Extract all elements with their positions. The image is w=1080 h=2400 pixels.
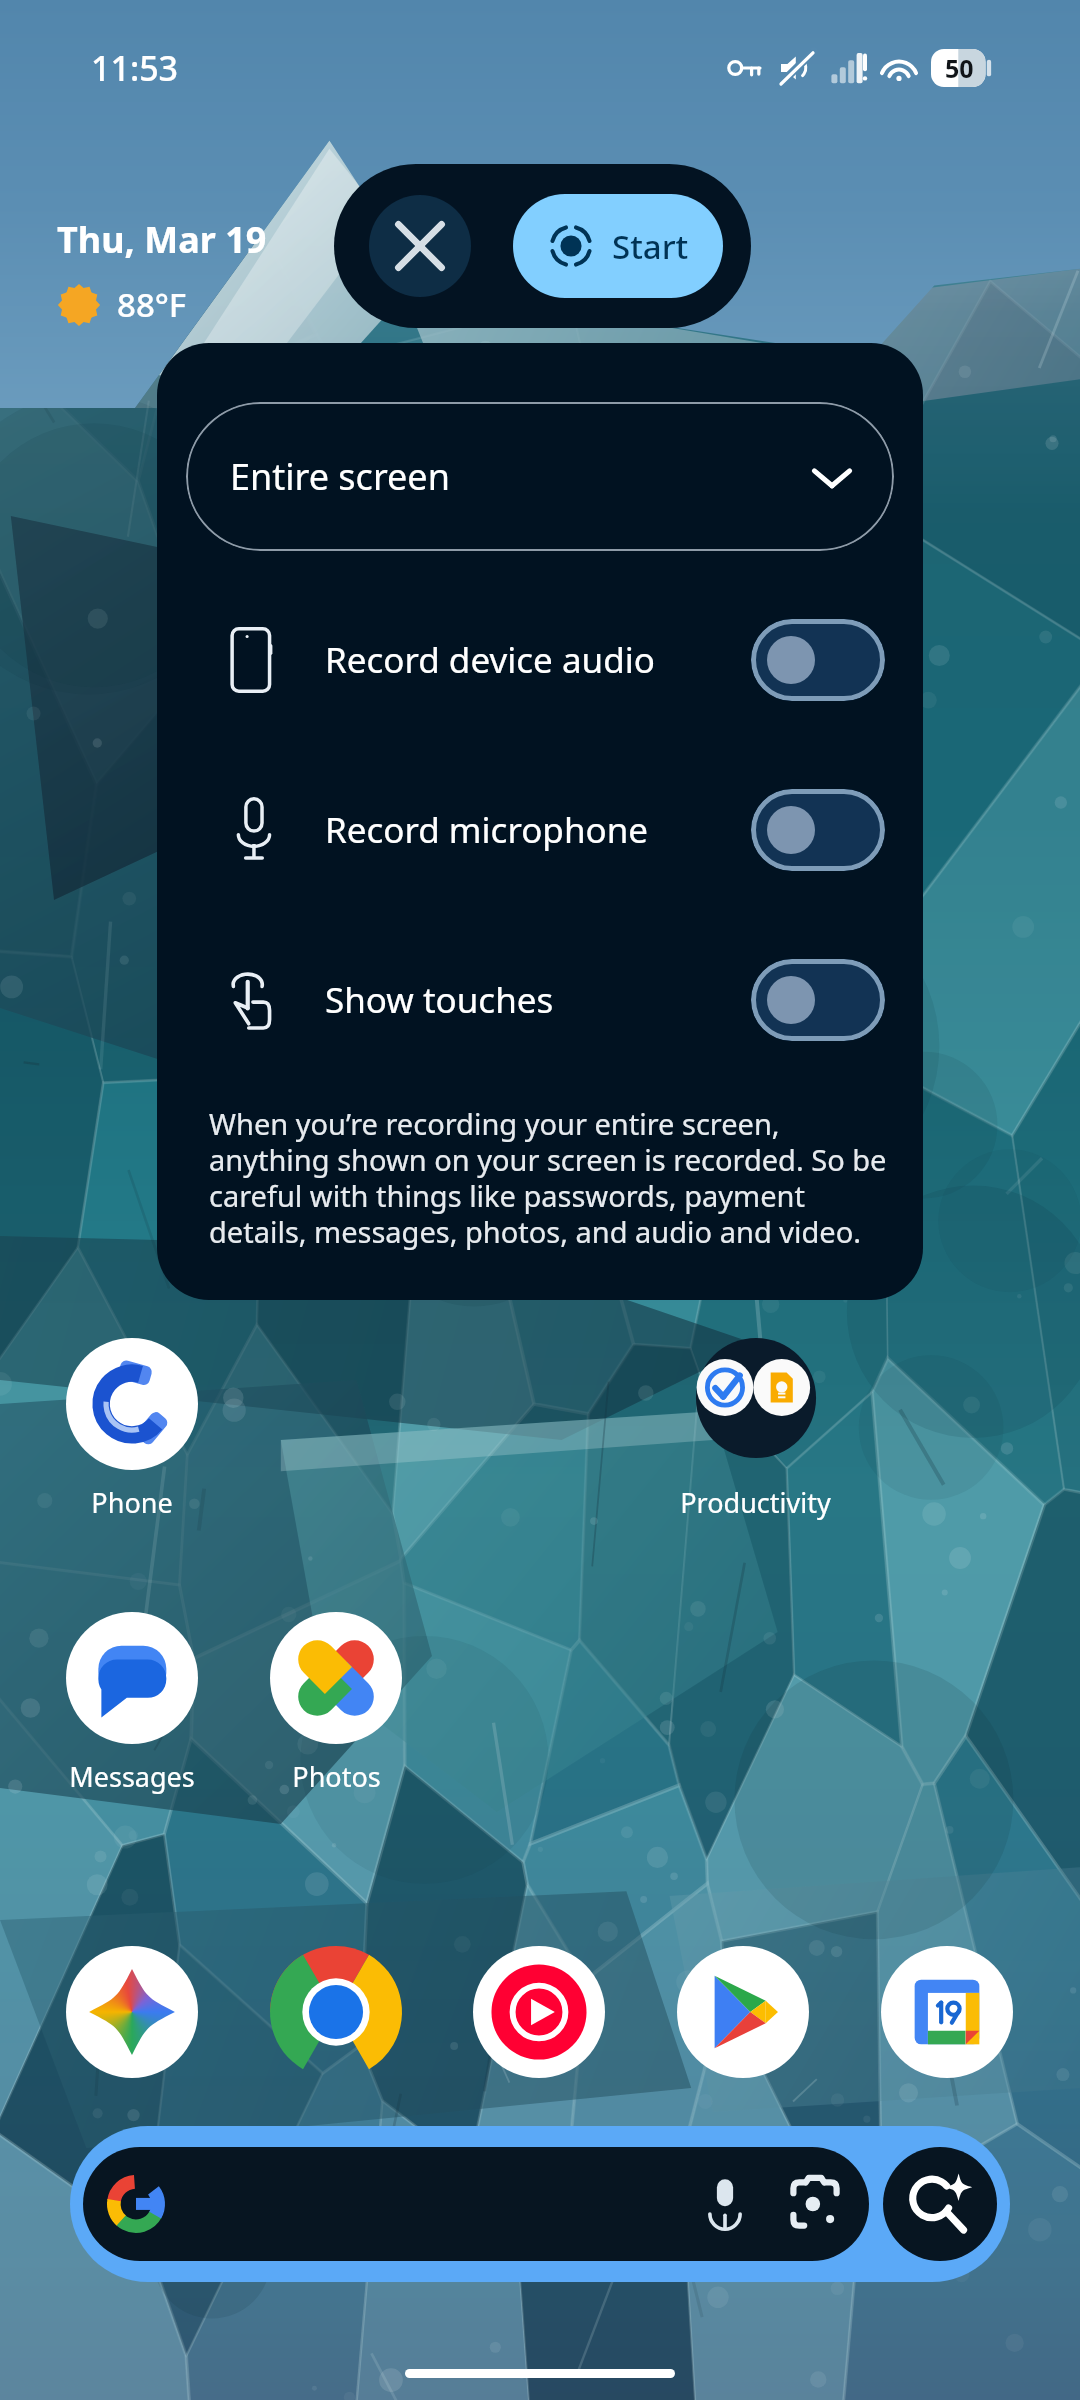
staticText: Thu, Mar 19 <box>57 215 267 264</box>
button[interactable]: Calendar <box>881 1946 1013 2078</box>
staticText: Entire screen <box>230 452 810 501</box>
staticText: 11:53 <box>91 45 179 91</box>
button[interactable]: Messages <box>66 1612 198 1744</box>
button[interactable]: Record microphone <box>157 768 923 892</box>
staticText: 50 <box>945 51 974 85</box>
button[interactable]: Voice search <box>693 2172 757 2236</box>
staticText: Record device audio <box>325 636 751 684</box>
button[interactable]: Phone <box>66 1338 198 1470</box>
button[interactable]: YouTube Music <box>473 1946 605 2078</box>
button[interactable]: Thu, Mar 19 <box>57 215 267 327</box>
button[interactable]: Record device audio <box>157 598 923 722</box>
button[interactable]: Gemini <box>66 1946 198 2078</box>
staticText: When you’re recording your entire screen… <box>209 1104 893 1252</box>
staticText: Record microphone <box>325 806 751 854</box>
button[interactable]: Chrome <box>270 1946 402 2078</box>
staticText: Messages <box>69 1758 195 1795</box>
button[interactable]: Play Store <box>677 1946 809 2078</box>
button[interactable]: Google Lens <box>783 2172 847 2236</box>
staticText: Start <box>612 224 689 269</box>
staticText: Productivity <box>680 1484 831 1521</box>
button[interactable]: Photos <box>270 1612 402 1744</box>
button[interactable]: Voice search <box>83 2147 869 2261</box>
staticText: Phone <box>91 1484 173 1521</box>
button[interactable]: Start <box>513 194 723 298</box>
button[interactable]: Productivity <box>690 1338 822 1470</box>
button[interactable]: Show touches <box>157 938 923 1062</box>
button[interactable]: Entire screen <box>186 402 894 551</box>
staticText: Show touches <box>325 976 751 1024</box>
button[interactable]: Circle to Search <box>883 2147 997 2261</box>
button[interactable]: Close <box>369 195 471 297</box>
staticText: Photos <box>292 1758 381 1795</box>
staticText: 88°F <box>117 282 187 327</box>
